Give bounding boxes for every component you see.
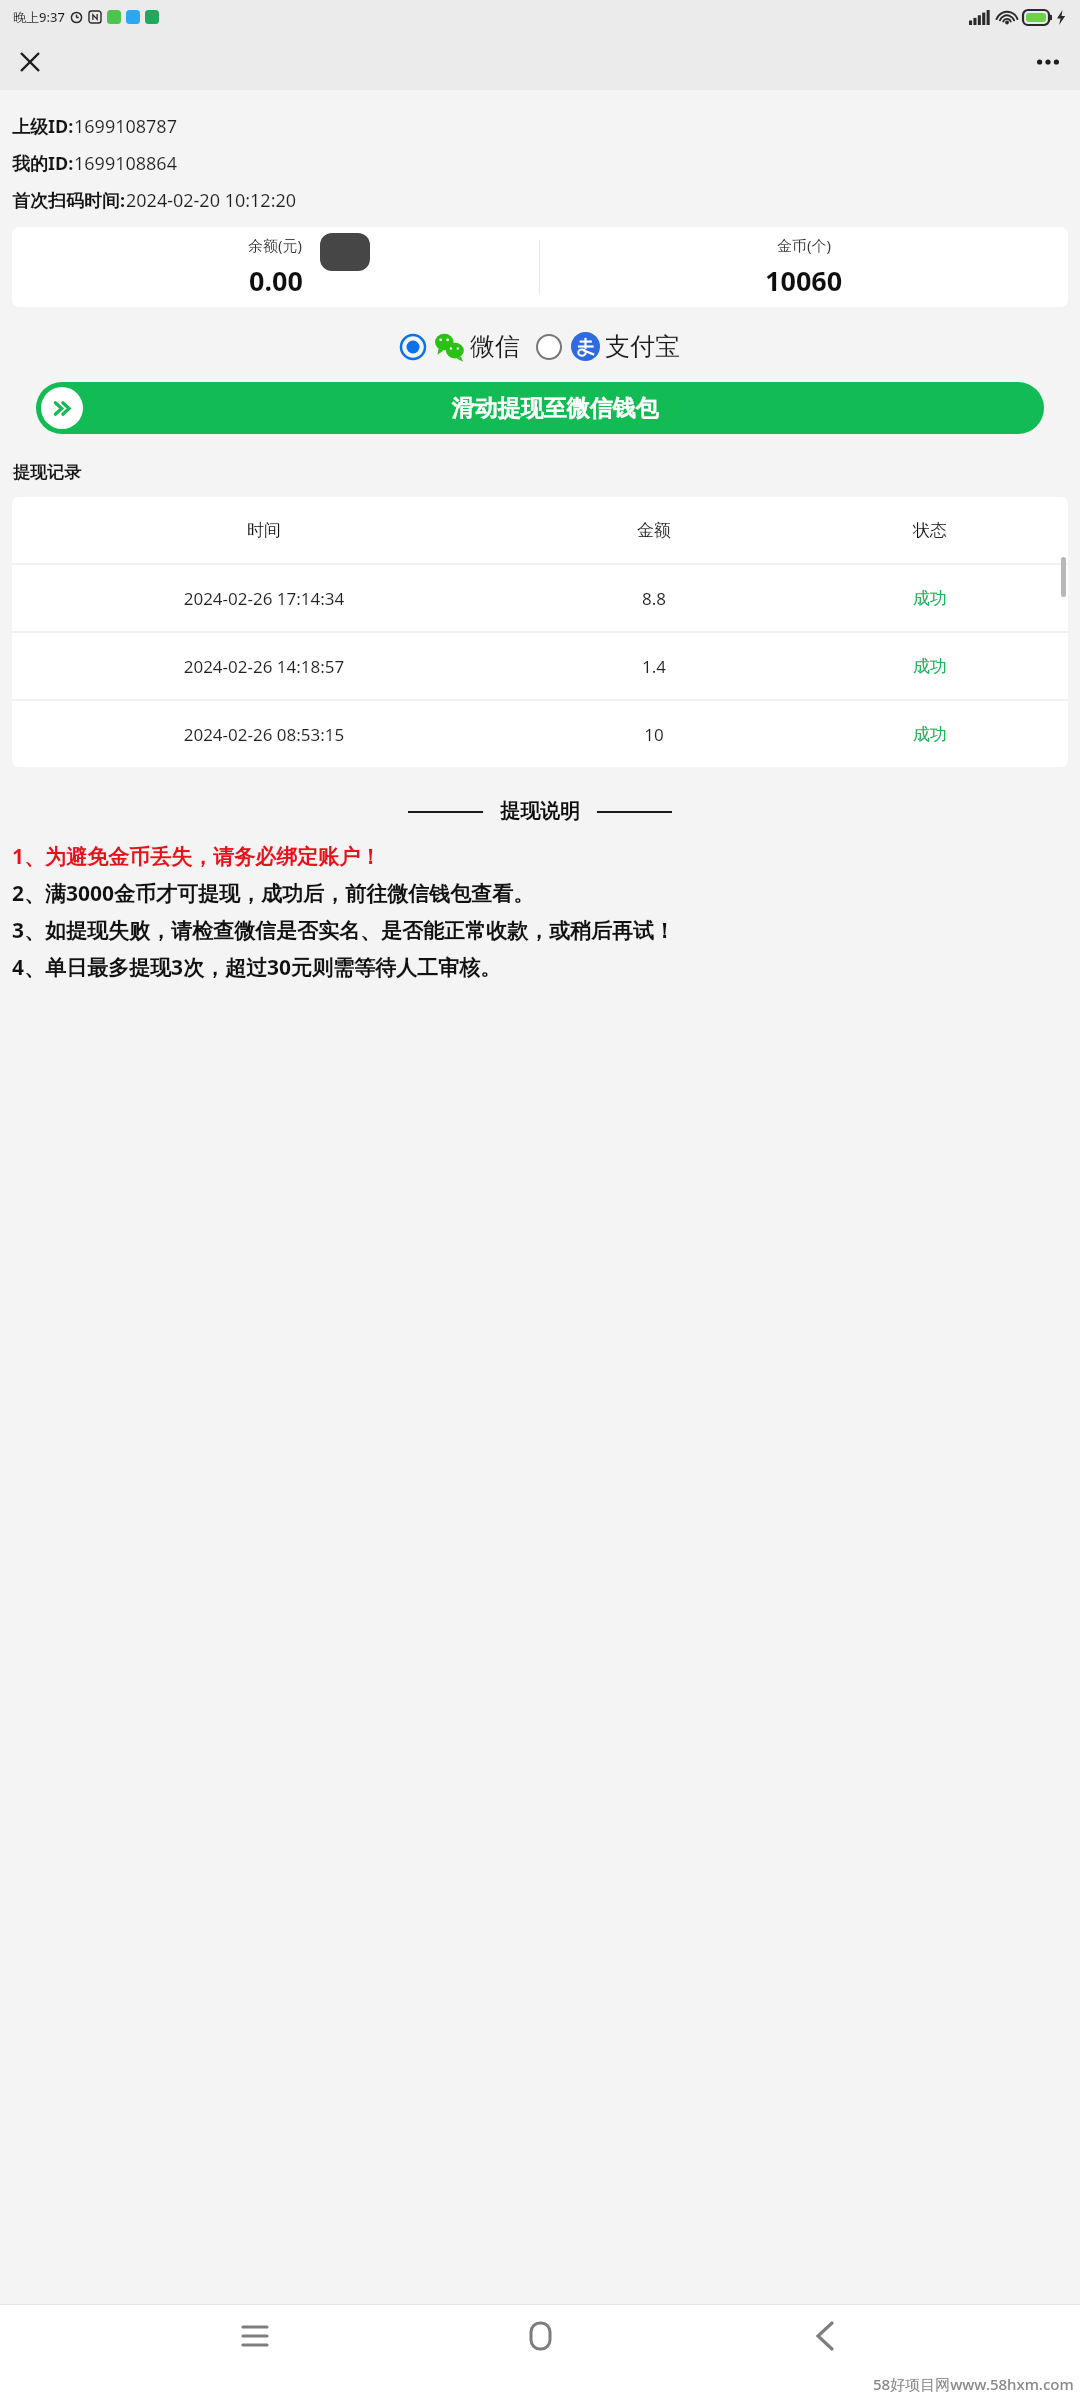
staticText: 1699108787 — [74, 114, 177, 139]
staticText: 余额(元) — [248, 235, 303, 255]
button[interactable]: 2024-02-26 08:53:15 — [12, 701, 1068, 767]
staticText: 支付宝 — [605, 331, 680, 362]
staticText: 2024-02-20 10:12:20 — [126, 188, 297, 213]
staticText: 微信 — [470, 331, 520, 362]
staticText: 提现记录 — [13, 462, 81, 483]
button[interactable]: Home — [510, 2306, 570, 2366]
staticText: 成功 — [792, 724, 1068, 745]
staticText: 晚上9:37 — [13, 8, 65, 26]
button[interactable]: Close — [8, 40, 52, 84]
staticText: 2024-02-26 17:14:34 — [12, 587, 516, 610]
staticText: 提现说明 — [500, 799, 580, 824]
staticText: 1699108864 — [74, 151, 177, 176]
staticText: 3、如提现失败，请检查微信是否实名、是否能正常收款，或稍后再试！ — [12, 916, 676, 945]
staticText: 金额 — [516, 520, 792, 541]
staticText: 金币(个) — [777, 235, 832, 255]
staticText: 我的ID: — [12, 151, 74, 176]
staticText: 10060 — [765, 262, 843, 299]
staticText: 滑动提现至微信钱包 — [66, 394, 1044, 423]
staticText: 首次扫码时间: — [12, 188, 126, 213]
staticText: 58好项目网www.58hxm.com — [873, 2374, 1074, 2394]
button[interactable]: 时间 — [12, 497, 1068, 563]
button[interactable]: 滑动提现至微信钱包 — [36, 382, 1044, 434]
staticText: 2、满3000金币才可提现，成功后，前往微信钱包查看。 — [12, 879, 535, 908]
button[interactable]: Recent apps — [225, 2306, 285, 2366]
button[interactable]: 金币(个) — [540, 227, 1068, 307]
staticText: 0.00 — [249, 262, 303, 299]
button[interactable]: Back — [795, 2306, 855, 2366]
staticText: 状态 — [792, 520, 1068, 541]
staticText: 10 — [516, 723, 792, 746]
button[interactable]: Floating assistant — [320, 233, 370, 271]
staticText: 8.8 — [516, 587, 792, 610]
staticText: 上级ID: — [12, 114, 74, 139]
button[interactable]: 2024-02-26 17:14:34 — [12, 565, 1068, 631]
button[interactable]: 2024-02-26 14:18:57 — [12, 633, 1068, 699]
staticText: 4、单日最多提现3次，超过30元则需等待人工审核。 — [12, 953, 502, 982]
staticText: 时间 — [12, 520, 516, 541]
button[interactable]: 微信 — [400, 331, 520, 362]
button[interactable]: More options — [1026, 40, 1070, 84]
staticText: 1.4 — [516, 655, 792, 678]
staticText: 2024-02-26 08:53:15 — [12, 723, 516, 746]
staticText: 2024-02-26 14:18:57 — [12, 655, 516, 678]
staticText: 成功 — [792, 588, 1068, 609]
button[interactable]: 余额(元) — [12, 227, 539, 307]
button[interactable]: 支付宝 — [536, 331, 680, 362]
staticText: 1、为避免金币丢失，请务必绑定账户！ — [12, 842, 382, 871]
staticText: 成功 — [792, 656, 1068, 677]
